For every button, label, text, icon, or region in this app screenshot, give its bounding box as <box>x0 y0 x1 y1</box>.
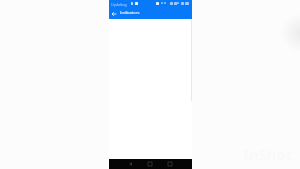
staticText: Updating <box>111 2 127 7</box>
button[interactable]: Back <box>111 11 117 17</box>
staticText: Indicators <box>120 10 140 16</box>
button[interactable]: Recent apps <box>166 159 174 169</box>
button[interactable]: Home <box>146 159 154 169</box>
button[interactable]: Back <box>126 159 134 169</box>
